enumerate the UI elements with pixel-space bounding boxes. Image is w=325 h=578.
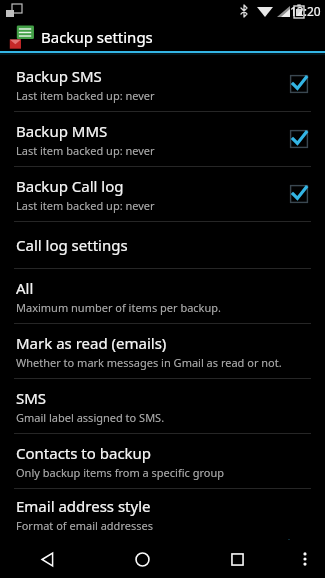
staticText: Format of email addresses — [16, 518, 153, 533]
staticText: Last item backed up: never — [16, 143, 155, 158]
button[interactable]: All — [0, 269, 325, 323]
staticText: Only backup items from a specific group — [16, 465, 224, 480]
staticText: Maximum number of items per backup. — [16, 300, 221, 315]
staticText: Backup SMS — [16, 66, 102, 86]
button[interactable]: Call log settings — [0, 222, 325, 268]
staticText: Backup Call log — [16, 176, 124, 196]
button[interactable]: Mark as read (emails) — [0, 324, 325, 378]
staticText: Mark as read (emails) — [16, 333, 167, 353]
button[interactable]: Backup SMS — [0, 57, 325, 111]
staticText: Whether to mark messages in Gmail as rea… — [16, 355, 282, 370]
staticText: Contacts to backup — [16, 443, 152, 463]
button[interactable]: Home — [95, 540, 190, 578]
button[interactable]: Contacts to backup — [0, 434, 325, 488]
button[interactable]: Recent apps — [190, 540, 285, 578]
staticText: Email address style — [16, 496, 151, 516]
staticText: 12:20 — [290, 3, 321, 19]
staticText: Last item backed up: never — [16, 88, 155, 103]
staticText: Gmail label assigned to SMS. — [16, 410, 165, 425]
staticText: Call log settings — [16, 235, 128, 255]
button[interactable]: Backup MMS — [0, 112, 325, 166]
button[interactable]: Backup Call log — [0, 167, 325, 221]
button[interactable]: Back — [0, 540, 95, 578]
button[interactable]: Email address style — [0, 489, 325, 540]
staticText: SMS — [16, 388, 47, 408]
staticText: Last item backed up: never — [16, 198, 155, 213]
staticText: Backup settings — [41, 27, 153, 47]
button[interactable]: SMS — [0, 379, 325, 433]
staticText: Backup MMS — [16, 121, 108, 141]
staticText: All — [16, 278, 34, 298]
button[interactable]: More options — [285, 540, 325, 578]
